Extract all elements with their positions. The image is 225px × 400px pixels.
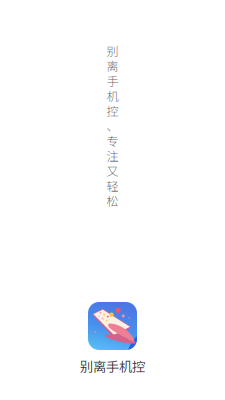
staticText: 控 [106,102,118,119]
staticText: 机 [106,87,118,104]
staticText: 松 [106,192,118,209]
staticText: 专 [106,132,118,149]
staticText: 又 [106,162,118,179]
staticText: 手 [106,72,118,89]
staticText: 轻 [106,177,118,194]
staticText: 离 [106,57,118,74]
staticText: 、 [106,117,118,134]
staticText: 别 [106,42,118,59]
staticText: 注 [106,147,118,164]
staticText: 别离手机控 [80,356,145,376]
